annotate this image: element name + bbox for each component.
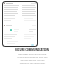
staticText: SECURE COMMUNICATION bbox=[15, 48, 49, 52]
other: Encryption badge bbox=[10, 29, 12, 31]
button[interactable]: New message bbox=[31, 44, 34, 46]
staticText: Messages and calls are end-to-end encryp… bbox=[17, 53, 48, 65]
